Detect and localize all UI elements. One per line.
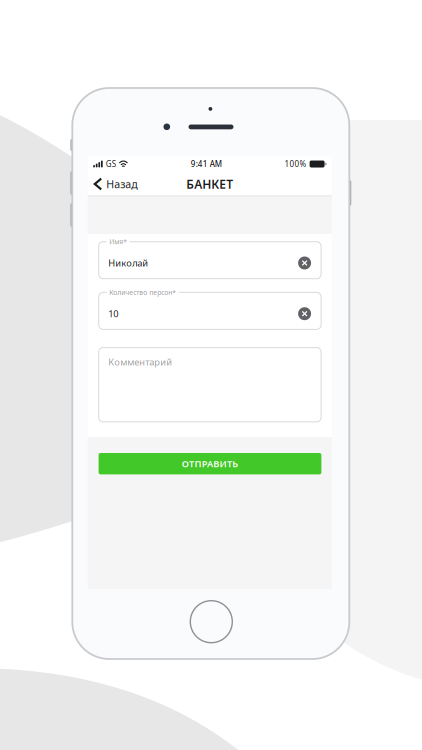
staticText: Комментарий: [108, 356, 172, 368]
staticText: Назад: [106, 177, 137, 191]
button[interactable]: Комментарий: [99, 348, 321, 422]
staticText: 100%: [285, 159, 307, 169]
staticText: 9:41 AM: [191, 159, 222, 169]
button[interactable]: Clear: [297, 306, 313, 322]
button[interactable]: Назад: [88, 172, 143, 196]
button[interactable]: ОТПРАВИТЬ: [99, 453, 321, 474]
button[interactable]: 10: [99, 292, 321, 329]
button[interactable]: Николай: [99, 242, 321, 279]
staticText: БАНКЕТ: [186, 176, 233, 192]
staticText: Количество персон*: [109, 288, 176, 297]
staticText: Николай: [108, 257, 148, 269]
staticText: Имя*: [109, 237, 127, 246]
staticText: ОТПРАВИТЬ: [182, 457, 238, 470]
staticText: GS: [106, 159, 116, 169]
staticText: 10: [108, 307, 118, 320]
button[interactable]: Clear: [297, 255, 313, 271]
